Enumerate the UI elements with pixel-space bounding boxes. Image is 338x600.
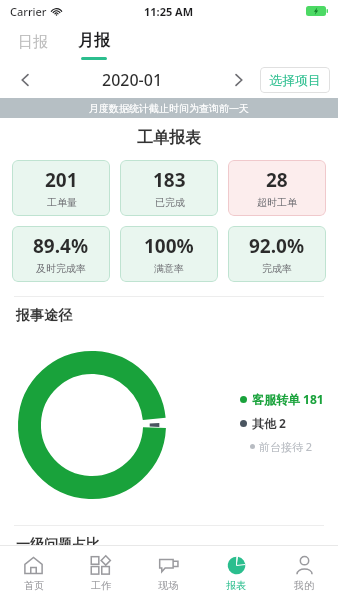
staticText: 报表: [226, 579, 246, 592]
button[interactable]: 选择项目: [260, 67, 330, 93]
staticText: 工单量: [47, 196, 77, 209]
staticText: 我的: [294, 579, 314, 592]
staticText: 客服转单 181: [252, 391, 324, 407]
button[interactable]: 现场: [134, 546, 202, 600]
staticText: 超时工单: [257, 196, 297, 209]
staticText: 日报: [18, 33, 48, 52]
button[interactable]: 89.4%: [12, 226, 110, 282]
button[interactable]: Previous month: [8, 63, 42, 97]
button[interactable]: 92.0%: [228, 226, 326, 282]
button[interactable]: 月报: [66, 22, 122, 62]
staticText: 现场: [158, 579, 178, 592]
staticText: Carrier: [10, 4, 47, 19]
button[interactable]: Next month: [222, 63, 256, 97]
staticText: 2020-01: [102, 69, 163, 91]
button[interactable]: 183: [120, 160, 218, 216]
staticText: 选择项目: [269, 72, 321, 88]
staticText: 28: [266, 167, 288, 193]
staticText: 其他 2: [252, 415, 286, 431]
staticText: 报事途径: [16, 307, 72, 325]
staticText: 100%: [144, 233, 194, 259]
staticText: 工作: [91, 579, 111, 592]
staticText: 月度数据统计截止时间为查询前一天: [89, 102, 249, 115]
staticText: 月报: [78, 31, 110, 51]
staticText: 201: [45, 167, 78, 193]
staticText: 首页: [24, 579, 44, 592]
staticText: 及时完成率: [36, 262, 86, 275]
button[interactable]: 日报: [0, 22, 66, 62]
staticText: 完成率: [262, 262, 292, 275]
button[interactable]: 100%: [120, 226, 218, 282]
button[interactable]: 报表: [202, 546, 270, 600]
button[interactable]: 201: [12, 160, 110, 216]
button[interactable]: 首页: [0, 546, 67, 600]
staticText: 一级问题占比: [16, 536, 100, 545]
button[interactable]: 工作: [67, 546, 134, 600]
button[interactable]: 28: [228, 160, 326, 216]
staticText: 前台接待 2: [259, 439, 313, 454]
staticText: 92.0%: [249, 233, 305, 259]
staticText: 工单报表: [0, 128, 338, 148]
staticText: 183: [153, 167, 186, 193]
staticText: 满意率: [154, 262, 184, 275]
staticText: 89.4%: [33, 233, 89, 259]
button[interactable]: 我的: [270, 546, 338, 600]
staticText: 11:25 AM: [144, 4, 194, 19]
staticText: 已完成: [155, 196, 185, 209]
